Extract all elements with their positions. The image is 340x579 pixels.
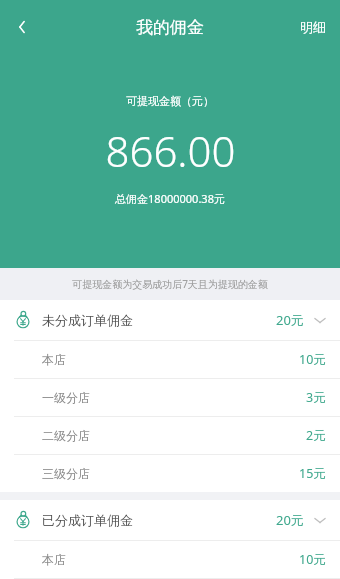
button[interactable]: 二级分店 [0,417,340,454]
button[interactable]: 一级分店 [0,379,340,416]
button[interactable]: 本店 [0,341,340,378]
button[interactable]: 已分成订单佣金 [0,500,340,540]
button[interactable]: 三级分店 [0,455,340,492]
staticText: 已分成订单佣金 [42,512,133,528]
staticText: 3元 [306,389,326,406]
staticText: 本店 [42,352,66,367]
staticText: 未分成订单佣金 [42,312,133,328]
staticText: 我的佣金 [136,17,204,38]
staticText: 明细 [300,19,326,35]
staticText: 10元 [299,351,326,368]
staticText: 20元 [276,311,304,329]
staticText: 15元 [299,465,326,482]
staticText: 866.00 [105,122,236,179]
staticText: 二级分店 [42,428,90,443]
button[interactable]: 未分成订单佣金 [0,300,340,340]
staticText: 本店 [42,552,66,567]
staticText: 2元 [306,427,326,444]
staticText: 三级分店 [42,466,90,481]
button[interactable]: 本店 [0,541,340,578]
staticText: 一级分店 [42,390,90,405]
staticText: 总佣金18000000.38元 [115,191,225,206]
staticText: 可提现金额为交易成功后7天且为提现的金额 [72,277,268,291]
staticText: 20元 [276,511,304,529]
staticText: 10元 [299,551,326,568]
staticText: 可提现金额（元） [126,94,214,108]
button[interactable]: 明细 [286,3,340,51]
button[interactable]: Back [0,3,44,51]
